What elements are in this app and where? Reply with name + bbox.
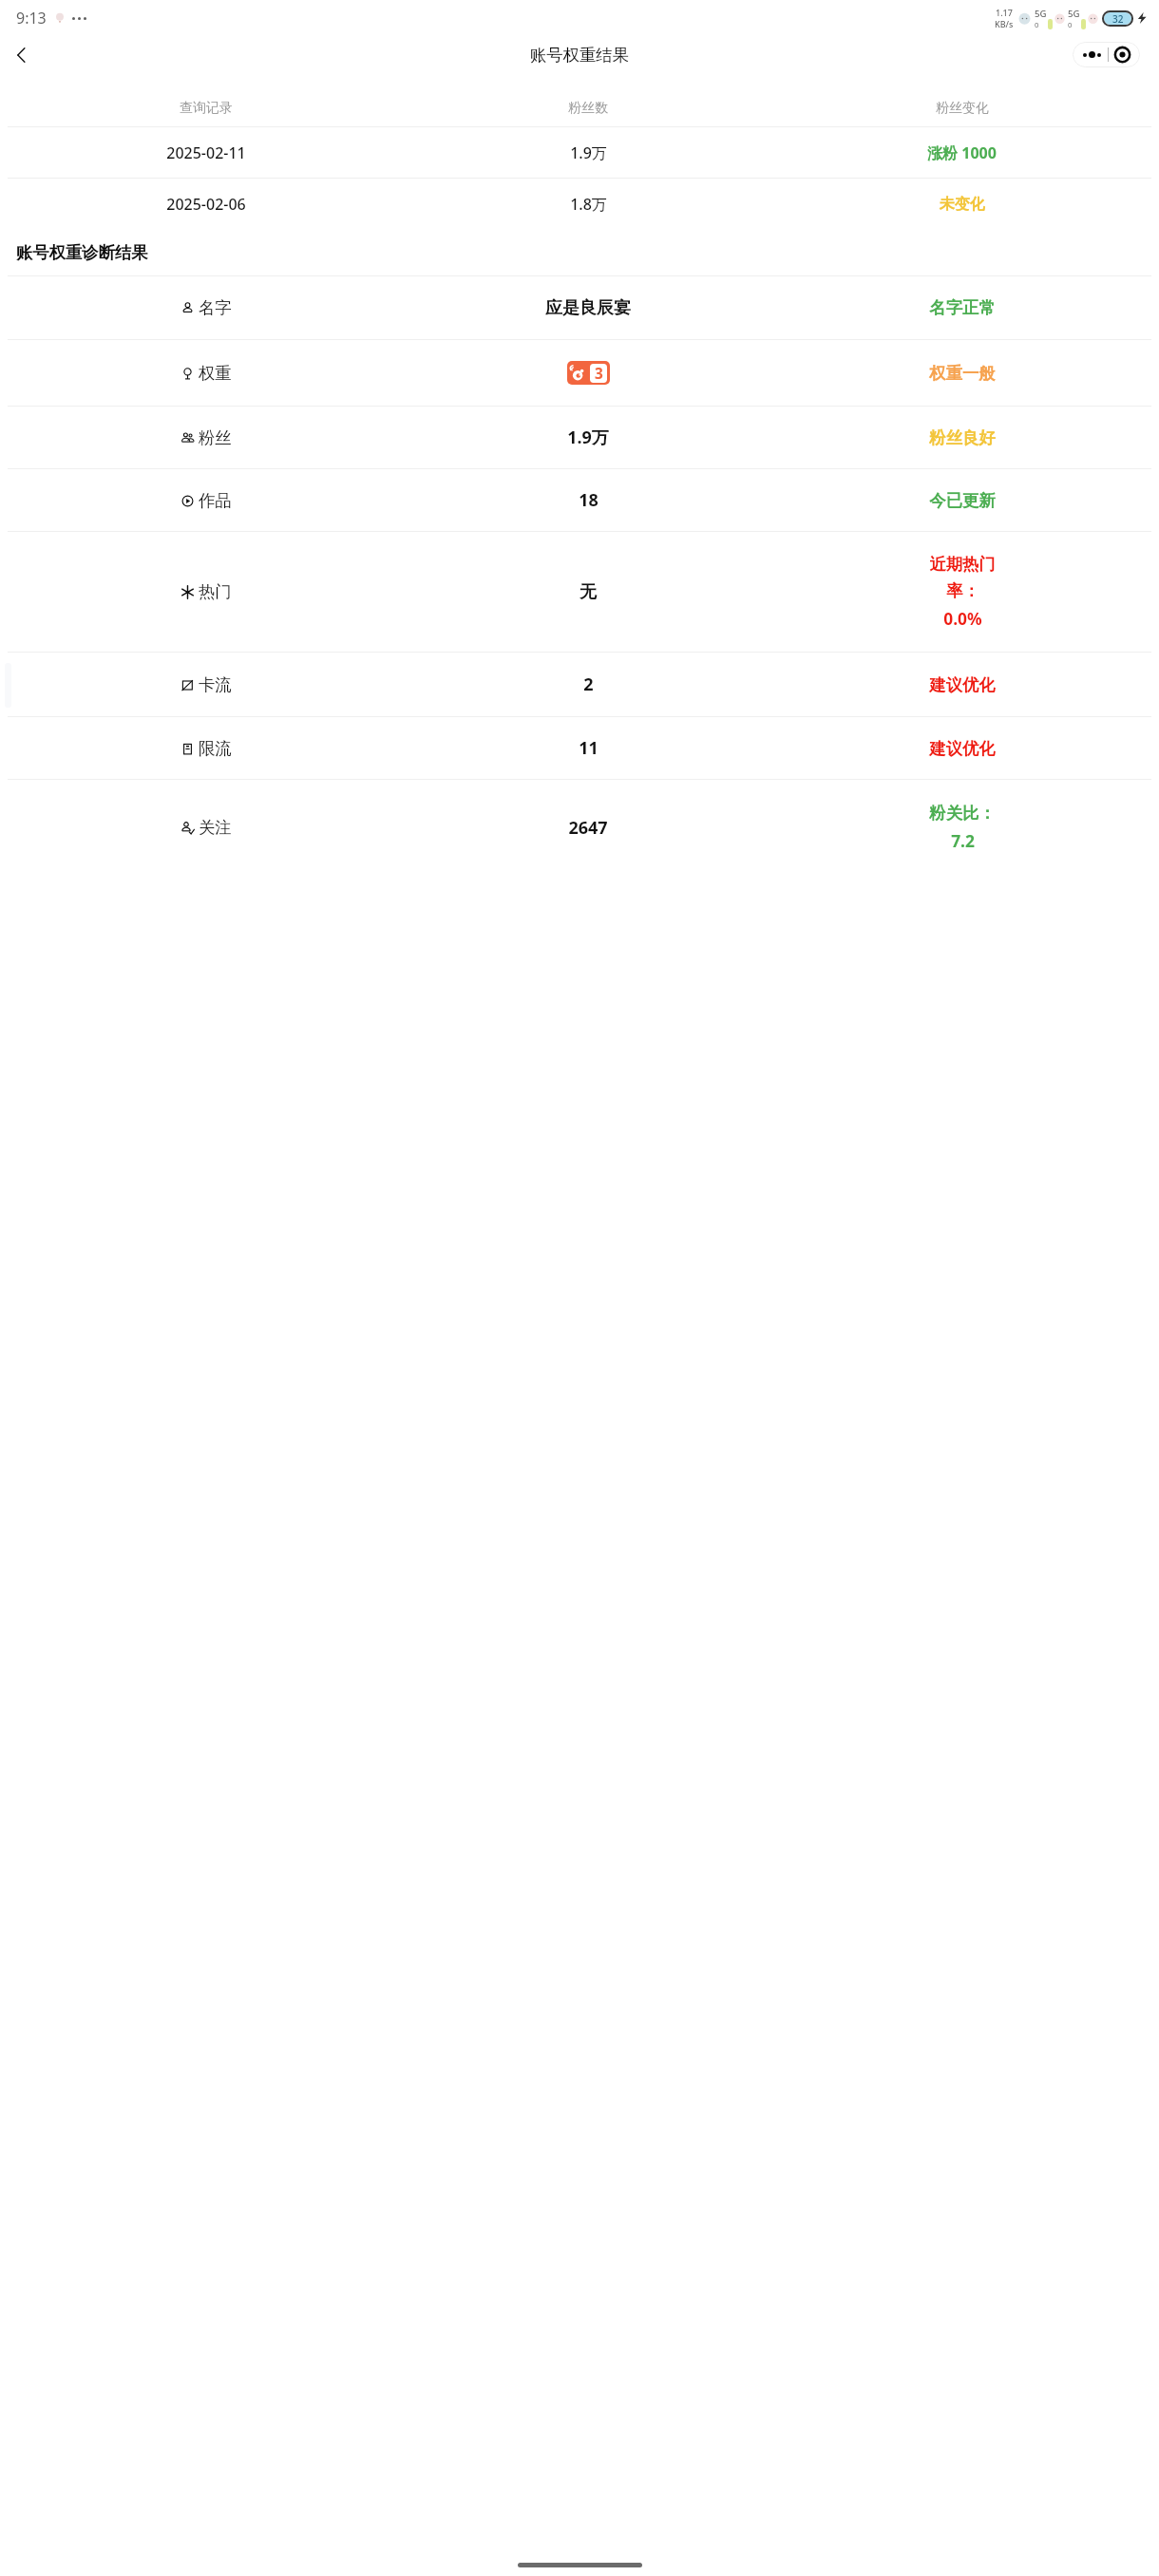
staticText: 未变化	[940, 195, 985, 214]
staticText: 作品	[199, 490, 232, 511]
staticText: 名字正常	[929, 297, 996, 318]
staticText: KB/s	[995, 18, 1014, 29]
button[interactable]: 卡流	[0, 653, 1159, 716]
staticText: 今已更新	[929, 490, 996, 511]
staticText: 名字	[199, 297, 232, 318]
button[interactable]: 粉丝	[0, 407, 1159, 468]
button[interactable]: 关注	[0, 780, 1159, 875]
button[interactable]: Menu and Close	[1073, 42, 1140, 67]
staticText: 建议优化	[929, 738, 996, 759]
staticText: 2025-02-06	[166, 194, 246, 215]
staticText: 账号权重诊断结果	[16, 242, 148, 263]
staticText: 11	[579, 736, 598, 760]
staticText: 限流	[199, 738, 232, 759]
staticText: 7.2	[951, 829, 975, 852]
staticText: 无	[579, 581, 597, 603]
staticText: 粉丝	[199, 427, 232, 448]
staticText: 粉丝变化	[936, 100, 989, 117]
staticText: 1.9万	[567, 426, 609, 449]
staticText: 0	[1068, 20, 1073, 29]
staticText: 涨粉 1000	[927, 142, 997, 163]
staticText: 应是良辰宴	[545, 297, 631, 319]
staticText: 1.17	[996, 7, 1013, 18]
button[interactable]: 2025-02-11	[0, 127, 1159, 178]
staticText: 近期热门	[929, 554, 996, 575]
staticText: 32	[1112, 12, 1124, 26]
staticText: 5G	[1068, 8, 1080, 20]
staticText: 粉关比：	[929, 803, 996, 824]
staticText: 3	[595, 364, 603, 383]
button[interactable]: 2025-02-06	[0, 179, 1159, 229]
staticText: 1.9万	[570, 142, 607, 163]
staticText: 建议优化	[929, 674, 996, 695]
staticText: 关注	[199, 817, 232, 838]
staticText: 0.0%	[943, 607, 982, 630]
staticText: 粉丝数	[568, 100, 608, 117]
staticText: 权重	[199, 363, 232, 384]
staticText: 2647	[568, 816, 608, 840]
button[interactable]: 权重	[0, 340, 1159, 406]
staticText: 0	[1035, 20, 1039, 29]
button[interactable]: Back	[7, 40, 37, 70]
staticText: 率：	[946, 580, 979, 601]
button[interactable]: 限流	[0, 717, 1159, 779]
staticText: 粉丝良好	[929, 427, 996, 448]
button[interactable]: 作品	[0, 469, 1159, 531]
staticText: 18	[579, 488, 598, 512]
staticText: 9:13	[16, 8, 47, 28]
staticText: 账号权重结果	[530, 45, 629, 66]
staticText: 热门	[199, 581, 232, 602]
button[interactable]: 名字	[0, 276, 1159, 339]
staticText: 5G	[1035, 8, 1047, 20]
staticText: 卡流	[199, 674, 232, 695]
staticText: 2025-02-11	[166, 142, 246, 163]
button[interactable]: 热门	[0, 532, 1159, 652]
staticText: 1.8万	[570, 194, 607, 215]
staticText: 查询记录	[180, 100, 233, 117]
staticText: 权重一般	[929, 363, 996, 384]
staticText: 2	[583, 672, 594, 696]
